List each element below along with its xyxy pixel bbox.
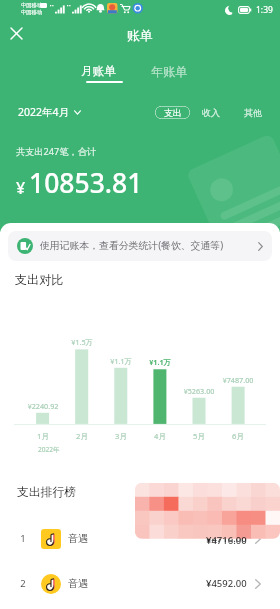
button[interactable]: 1: [0, 516, 280, 561]
staticText: 2月: [62, 431, 102, 441]
button[interactable]: 2022年4月: [15, 103, 84, 121]
button[interactable]: 支出: [155, 106, 190, 119]
button[interactable]: 其他: [240, 104, 266, 121]
staticText: 音遇: [68, 532, 88, 545]
staticText: 6月: [218, 431, 258, 441]
button[interactable]: 使用记账本，查看分类统计(餐饮、交通等): [8, 231, 272, 261]
staticText: 2022年4月: [18, 105, 70, 119]
staticText: ¥1.1万: [97, 356, 145, 366]
staticText: 2022年: [38, 445, 60, 454]
staticText: 音遇: [68, 577, 88, 590]
staticText: 1: [17, 532, 29, 545]
button[interactable]: 收入: [198, 104, 224, 121]
staticText: 共支出247笔，合计: [16, 145, 97, 158]
staticText: ¥1.5万: [58, 337, 106, 347]
staticText: ¥5263.00: [175, 386, 223, 396]
staticText: ¥4592.00: [206, 577, 247, 590]
staticText: 使用记账本，查看分类统计(餐饮、交通等): [40, 238, 224, 251]
button[interactable]: Close: [4, 22, 28, 44]
staticText: 支出排行榜: [17, 485, 76, 500]
button[interactable]: 2: [0, 561, 280, 606]
button[interactable]: 年账单: [149, 64, 190, 79]
staticText: 支出: [164, 107, 182, 118]
staticText: 账单: [127, 28, 153, 44]
staticText: ¥4716.00: [206, 532, 247, 545]
staticText: ¥7487.00: [214, 375, 262, 385]
staticText: 年账单: [151, 64, 188, 79]
staticText: 1:39: [256, 4, 273, 16]
staticText: 1月: [23, 431, 63, 441]
staticText: 收入: [202, 107, 220, 118]
staticText: ¥2240.92: [19, 401, 67, 411]
staticText: ¥: [16, 177, 26, 199]
staticText: 4月: [140, 431, 180, 441]
staticText: 中国移动: [21, 9, 43, 16]
staticText: 2: [17, 577, 29, 590]
staticText: 支出对比: [15, 272, 64, 287]
staticText: 5月: [179, 431, 219, 441]
staticText: ¥4716.00: [206, 534, 247, 547]
staticText: 中国移动: [21, 2, 43, 9]
button[interactable]: 月账单: [78, 64, 119, 83]
staticText: 其他: [244, 107, 262, 118]
staticText: 月账单: [81, 64, 116, 79]
staticText: 3月: [101, 431, 141, 441]
staticText: ¥1.1万: [136, 357, 184, 367]
staticText: 10853.81: [29, 165, 143, 201]
